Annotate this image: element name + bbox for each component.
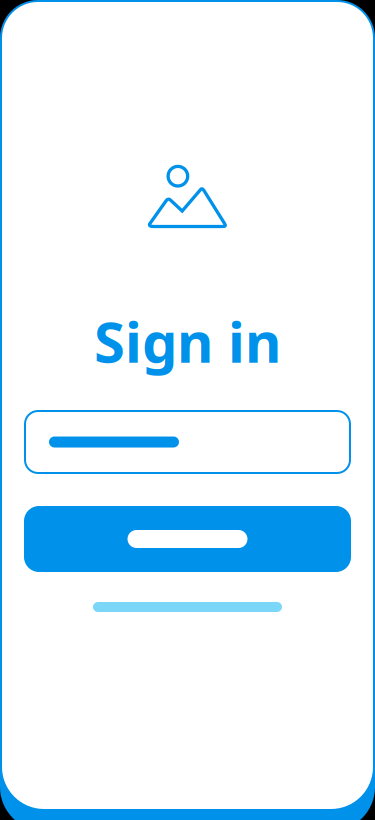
button[interactable]: Sign in <box>24 506 351 572</box>
staticText: Sign in <box>94 304 281 378</box>
button[interactable]: Email address <box>25 411 350 473</box>
button[interactable]: Forgot your password <box>76 592 299 622</box>
